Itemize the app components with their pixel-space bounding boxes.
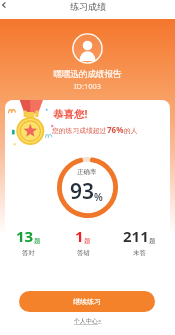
- staticText: 的人: [124, 126, 138, 135]
- staticText: ID:1003: [0, 81, 175, 91]
- staticText: 211: [123, 226, 149, 246]
- staticText: 个人中心>: [74, 317, 102, 325]
- staticText: 您的练习成绩超过: [52, 126, 107, 135]
- staticText: 恭喜您!: [53, 107, 88, 121]
- staticText: 1: [75, 226, 84, 246]
- staticText: 未答: [133, 249, 146, 257]
- staticText: 题: [84, 237, 91, 245]
- button[interactable]: Back: [0, 0, 10, 11]
- staticText: 答错: [77, 249, 90, 257]
- staticText: 76%: [107, 124, 124, 135]
- staticText: 题: [149, 237, 156, 245]
- staticText: 嘿嘿迅的成绩报告: [0, 69, 175, 80]
- staticText: 练习成绩: [70, 1, 106, 12]
- button[interactable]: 个人中心>: [70, 315, 106, 327]
- staticText: %: [94, 190, 103, 204]
- staticText: 继续练习: [73, 297, 101, 306]
- staticText: 13: [16, 226, 34, 246]
- staticText: 题: [34, 237, 41, 245]
- staticText: 正确率: [77, 168, 97, 176]
- staticText: 93: [70, 177, 95, 206]
- button[interactable]: 继续练习: [19, 291, 155, 312]
- staticText: 答对: [22, 249, 35, 257]
